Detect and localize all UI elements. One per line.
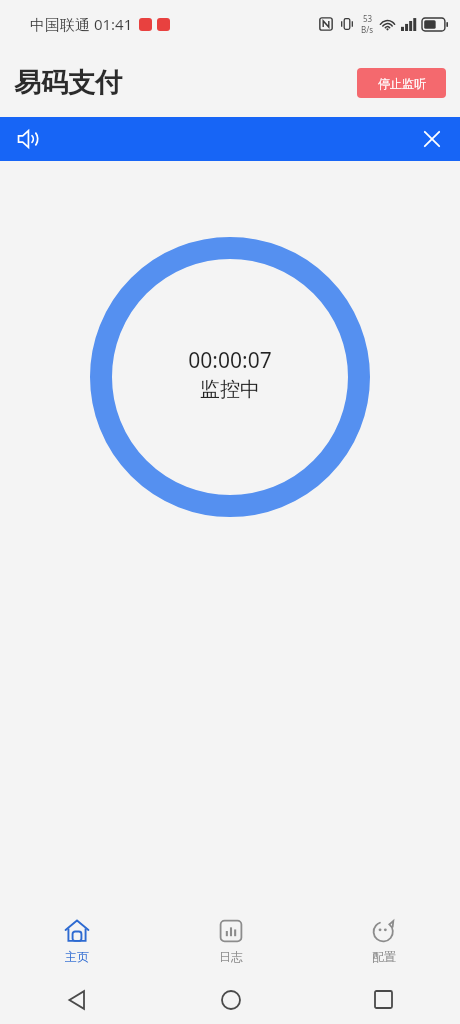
staticText: 53 (363, 13, 373, 24)
staticText: 配置 (372, 949, 396, 964)
staticText: 停止监听 (378, 76, 426, 91)
staticText: 中国联通 01:41 (30, 14, 133, 34)
staticText: 主页 (65, 949, 89, 964)
button[interactable]: 停止监听 (357, 68, 446, 98)
staticText: 易码支付 (14, 66, 122, 100)
staticText: 00:00:07 (188, 346, 272, 375)
button[interactable]: 日志 (154, 907, 307, 975)
button[interactable]: Sound (8, 119, 48, 159)
staticText: 日志 (219, 949, 243, 964)
button[interactable]: 主页 (0, 907, 154, 975)
button[interactable]: Back (0, 975, 154, 1024)
staticText: 监控中 (200, 377, 260, 402)
button[interactable]: Recent apps (307, 975, 460, 1024)
button[interactable]: 配置 (307, 907, 460, 975)
button[interactable]: Home (154, 975, 307, 1024)
button[interactable]: Close (412, 119, 452, 159)
staticText: B/s (361, 24, 374, 35)
